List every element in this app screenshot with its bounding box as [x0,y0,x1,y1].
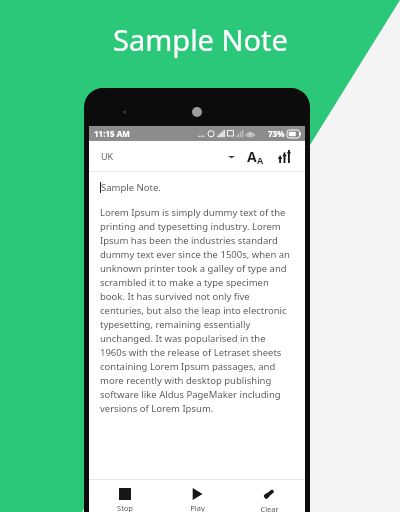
staticText: UK [101,150,114,162]
button[interactable]: Text size [242,143,268,169]
button[interactable]: Stop [89,480,161,512]
button[interactable]: Speech settings [271,143,297,169]
staticText: Stop [117,503,133,512]
staticText: 11:15 AM [94,128,130,139]
button[interactable]: Clear [233,480,305,512]
staticText: A [257,154,264,166]
staticText: Sample Note. [101,181,161,194]
staticText: Clear [260,504,279,512]
staticText: Play [190,503,205,512]
staticText: 73% [268,128,285,139]
staticText: Lorem Ipsum is simply dummy text of the … [100,206,294,415]
button[interactable]: Play [161,480,233,512]
staticText: Sample Note [113,20,288,59]
button[interactable]: UK [89,141,242,171]
staticText: A [247,147,257,166]
